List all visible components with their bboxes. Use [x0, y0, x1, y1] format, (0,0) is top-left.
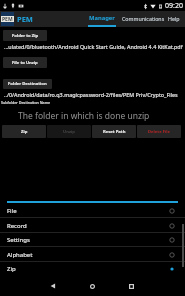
- button[interactable]: Alphabet: [0, 247, 185, 262]
- staticText: File to Unzip: [12, 60, 38, 66]
- staticText: Reset Path: [103, 129, 126, 135]
- staticText: Manager: [89, 14, 115, 22]
- staticText: Unzip: [63, 129, 75, 135]
- staticText: Alphabet: [7, 251, 33, 259]
- staticText: Folder Destination: [8, 81, 47, 87]
- staticText: Zip: [7, 265, 16, 273]
- staticText: Help: [168, 15, 180, 22]
- button[interactable]: Record: [0, 218, 185, 233]
- button[interactable]: Reset Path: [92, 125, 136, 138]
- staticText: Communications: [122, 15, 165, 22]
- staticText: ../0/Android/data/ro.q3.magicpassword-2/…: [4, 91, 178, 98]
- staticText: ...ulated/0/bluetooth/Android Quick Star…: [4, 43, 183, 50]
- button[interactable]: File to Unzip: [3, 57, 47, 68]
- button[interactable]: Unzip: [47, 125, 91, 138]
- staticText: PEM: [17, 14, 33, 24]
- button[interactable]: Back: [44, 277, 62, 295]
- staticText: The folder in which is done unzip: [18, 110, 150, 122]
- button[interactable]: File: [0, 203, 185, 218]
- staticText: Folder to Zip: [12, 33, 39, 39]
- staticText: Zip: [21, 129, 28, 135]
- button[interactable]: Delete File: [137, 125, 181, 138]
- staticText: Subfolder Destination Name: [1, 100, 51, 105]
- button[interactable]: Settings: [0, 232, 185, 247]
- staticText: Delete File: [148, 129, 171, 135]
- button[interactable]: Zip: [0, 261, 185, 276]
- staticText: Record: [7, 222, 27, 230]
- staticText: File: [7, 207, 17, 215]
- button[interactable]: PEM: [0, 11, 36, 27]
- button[interactable]: Help: [167, 11, 180, 27]
- button[interactable]: Communications: [121, 11, 165, 27]
- button[interactable]: Folder Destination: [3, 79, 52, 89]
- button[interactable]: Recent apps: [122, 277, 140, 295]
- staticText: 09:20: [165, 1, 183, 11]
- button[interactable]: Manager: [88, 11, 116, 27]
- button[interactable]: Folder to Zip: [3, 30, 47, 41]
- button[interactable]: Home: [83, 277, 101, 295]
- staticText: PEM: [2, 16, 13, 22]
- staticText: Settings: [7, 236, 30, 244]
- button[interactable]: Zip: [2, 125, 46, 138]
